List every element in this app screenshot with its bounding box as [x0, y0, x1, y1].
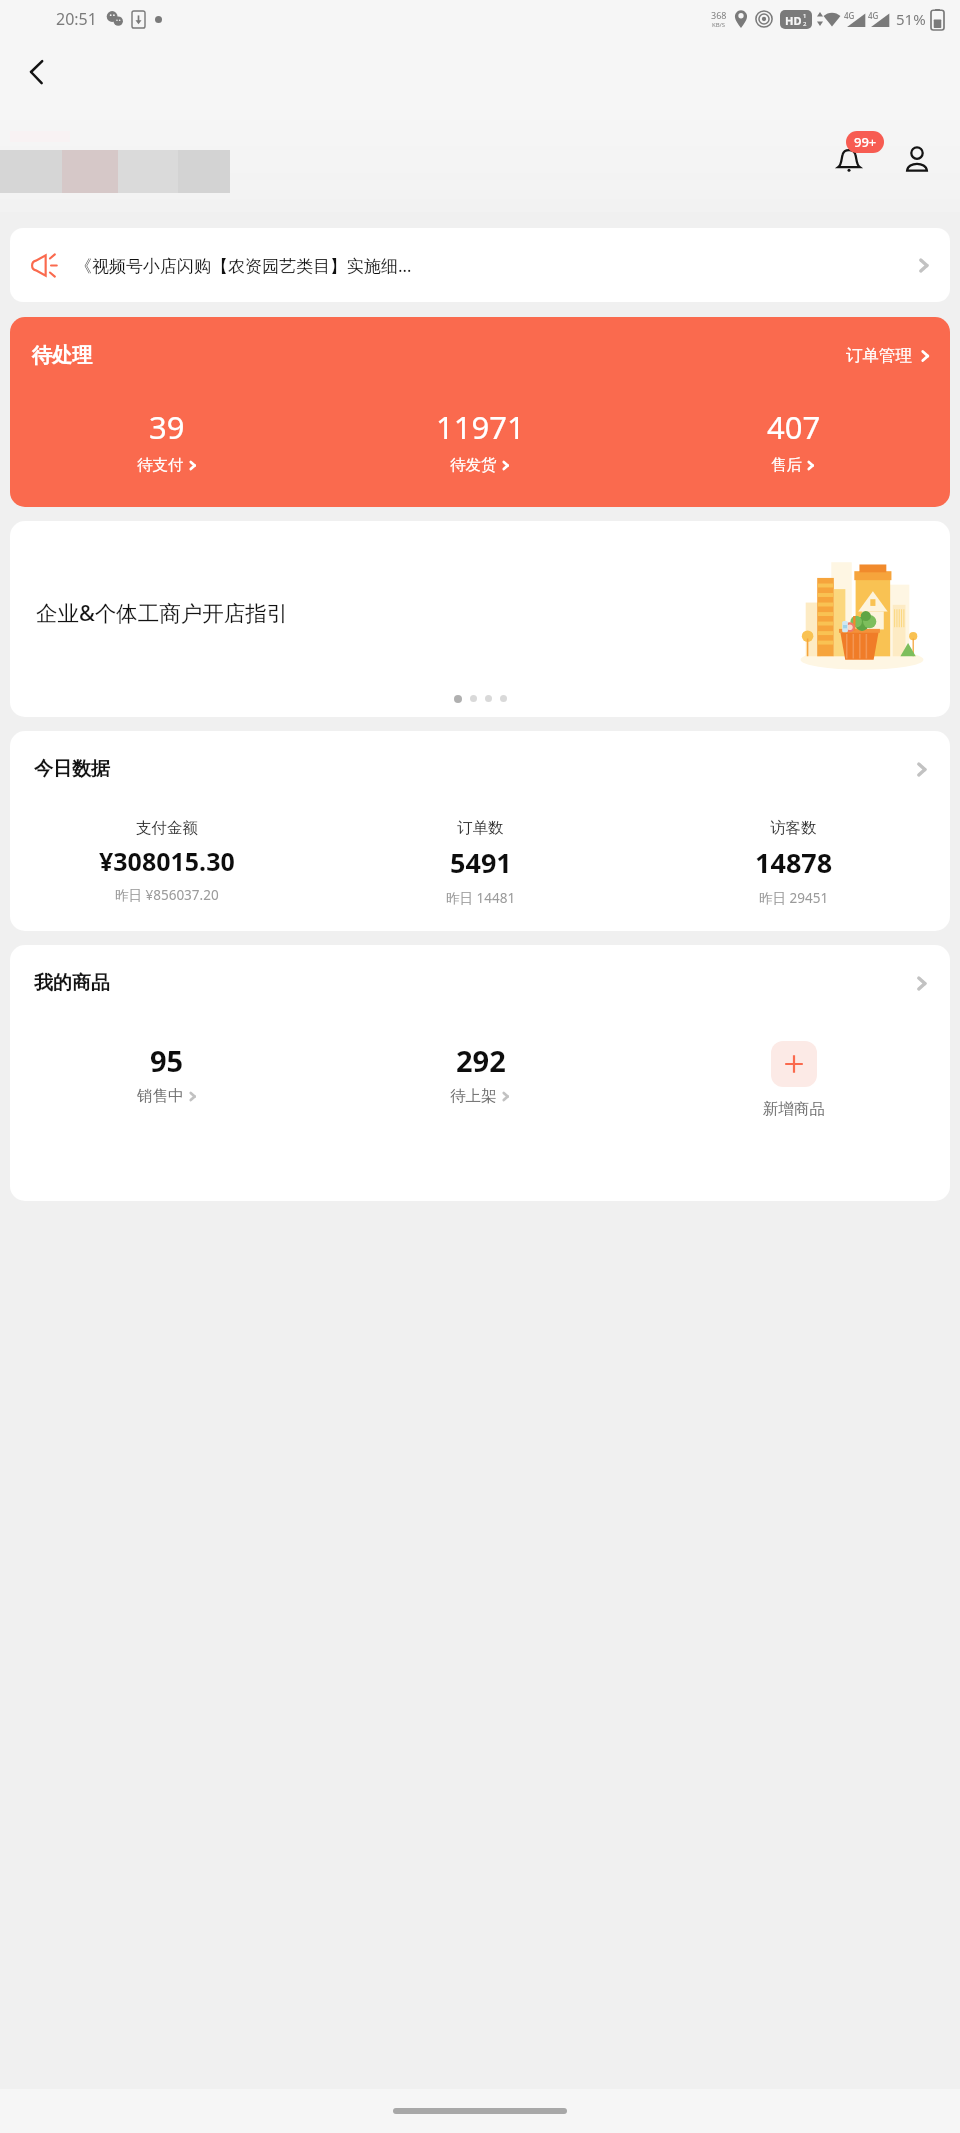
staticText: 订单数 [457, 818, 504, 838]
staticText: 4G [844, 10, 855, 21]
button[interactable]: 企业&个体工商户开店指引 [10, 521, 950, 717]
staticText: 订单管理 [846, 345, 912, 366]
staticText: 待处理 [32, 343, 92, 368]
staticText: 292 [456, 1041, 506, 1080]
button[interactable]: 39 [10, 406, 324, 475]
staticText: 5491 [450, 844, 512, 881]
button[interactable]: 待处理 [10, 317, 950, 507]
staticText: 待上架 [450, 1086, 497, 1106]
staticText: 昨日 14481 [446, 889, 516, 907]
staticText: 368 [711, 9, 727, 21]
staticText: 今日数据 [34, 757, 110, 781]
staticText: 待支付 [137, 455, 184, 475]
button[interactable]: 292 [324, 1041, 637, 1106]
staticText: 昨日 ¥856037.20 [115, 886, 219, 904]
button[interactable]: 新增商品 [637, 1041, 950, 1119]
button[interactable]: 《视频号小店闪购【农资园艺类目】实施细… [10, 228, 950, 302]
staticText: 4G [868, 10, 879, 21]
staticText: ¥308015.30 [99, 844, 235, 878]
staticText: HD [785, 13, 802, 28]
staticText: 2 [803, 20, 807, 28]
button[interactable]: Back [12, 47, 62, 97]
staticText: 39 [149, 406, 185, 448]
staticText: 95 [150, 1041, 184, 1080]
staticText: 《视频号小店闪购【农资园艺类目】实施细… [75, 254, 909, 277]
button[interactable]: 订单管理 [846, 345, 932, 366]
staticText: 11971 [436, 406, 525, 448]
staticText: 昨日 29451 [759, 889, 829, 907]
staticText: 待发货 [450, 455, 497, 475]
staticText: 407 [767, 406, 821, 448]
staticText: 我的商品 [34, 971, 110, 995]
staticText: 访客数 [770, 818, 817, 838]
button[interactable]: 今日数据 [10, 731, 950, 931]
staticText: 企业&个体工商户开店指引 [36, 598, 289, 627]
button[interactable]: 95 [10, 1041, 324, 1106]
staticText: 新增商品 [763, 1099, 825, 1119]
button[interactable]: 407 [637, 406, 950, 475]
button[interactable]: Notifications [820, 131, 878, 189]
button[interactable]: Profile [892, 135, 942, 185]
staticText: 销售中 [137, 1086, 184, 1106]
staticText: KB/S [712, 21, 726, 29]
staticText: 51% [896, 9, 926, 29]
staticText: 99+ [854, 133, 877, 151]
staticText: 20:51 [56, 8, 97, 30]
staticText: 1 [803, 12, 807, 20]
staticText: 支付金额 [136, 818, 198, 838]
button[interactable]: 我的商品 [10, 945, 950, 1201]
staticText: 售后 [771, 455, 802, 475]
button[interactable]: 11971 [324, 406, 637, 475]
staticText: 14878 [755, 844, 833, 881]
